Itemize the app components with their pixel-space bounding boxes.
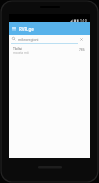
staticText: mcxeta mti	[13, 51, 29, 55]
staticText: RVR.ge	[19, 26, 34, 32]
button[interactable]: Tbilisi	[9, 46, 90, 55]
button[interactable]	[12, 27, 16, 30]
staticText: 786	[79, 48, 85, 52]
button[interactable]	[80, 38, 83, 41]
button[interactable]: mikroregioni	[9, 35, 90, 43]
button[interactable]: RVR.ge	[9, 22, 90, 35]
staticText: mikroregioni	[18, 37, 39, 42]
staticText: 1:10	[80, 18, 87, 23]
staticText: Tbilisi	[13, 46, 23, 51]
